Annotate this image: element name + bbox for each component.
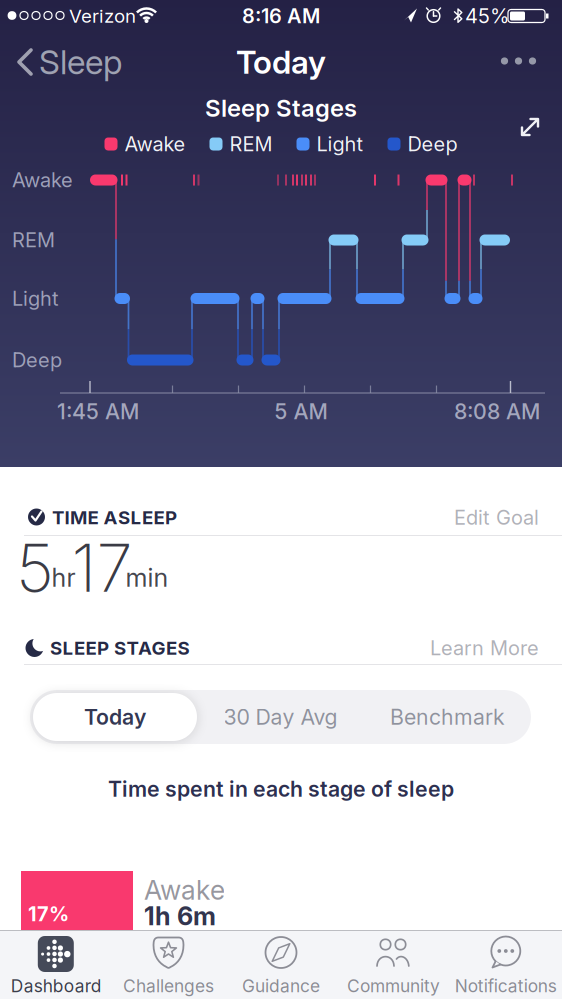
button[interactable]: Notifications — [450, 930, 562, 999]
button[interactable]: Benchmark — [365, 690, 529, 744]
staticText: Time spent in each stage of sleep — [108, 776, 454, 802]
staticText: Awake — [12, 168, 73, 192]
button[interactable] — [508, 105, 552, 149]
staticText: Deep — [407, 132, 457, 156]
staticText: Sleep Stages — [205, 94, 357, 122]
button[interactable]: Dashboard — [0, 930, 112, 999]
staticText: REM — [12, 228, 55, 252]
staticText: Sleep — [39, 42, 122, 82]
staticText: 1:45 AM — [57, 399, 139, 424]
button[interactable]: Today — [33, 690, 197, 744]
staticText: Today — [236, 43, 326, 81]
staticText: 30 Day Avg — [223, 704, 337, 730]
staticText: Deep — [12, 348, 62, 372]
staticText: Learn More — [430, 636, 539, 660]
staticText: Awake — [144, 874, 225, 906]
button[interactable]: Sleep — [8, 40, 128, 84]
staticText: SLEEP STAGES — [50, 637, 189, 659]
staticText: 45% — [465, 4, 509, 28]
staticText: Edit Goal — [454, 506, 539, 529]
staticText: min — [125, 563, 168, 592]
button[interactable]: Guidance — [225, 930, 337, 999]
staticText: Verizon — [69, 5, 136, 27]
staticText: REM — [229, 132, 272, 156]
staticText: Light — [316, 132, 363, 156]
button[interactable]: 30 Day Avg — [198, 690, 362, 744]
staticText: Benchmark — [390, 704, 505, 730]
staticText: 8:16 AM — [242, 4, 320, 28]
button[interactable]: Edit Goal — [419, 497, 549, 537]
staticText: 8:08 AM — [454, 399, 540, 424]
staticText: TIME ASLEEP — [52, 506, 177, 528]
staticText: Light — [12, 287, 59, 310]
staticText: 5 — [16, 529, 54, 607]
staticText: 17% — [28, 902, 69, 926]
staticText: Today — [84, 704, 146, 730]
staticText: hr — [51, 563, 75, 592]
button[interactable]: Learn More — [409, 628, 549, 668]
staticText: Community — [347, 976, 440, 996]
staticText: Dashboard — [11, 976, 102, 996]
button[interactable]: Community — [337, 930, 449, 999]
staticText: Awake — [124, 132, 185, 156]
staticText: 5 AM — [274, 399, 327, 424]
staticText: 17 — [71, 529, 132, 607]
staticText: Guidance — [242, 976, 320, 996]
button[interactable]: Challenges — [113, 930, 225, 999]
staticText: Challenges — [123, 976, 214, 996]
button[interactable] — [492, 40, 548, 84]
staticText: Notifications — [455, 976, 557, 996]
staticText: 1h 6m — [144, 901, 216, 931]
